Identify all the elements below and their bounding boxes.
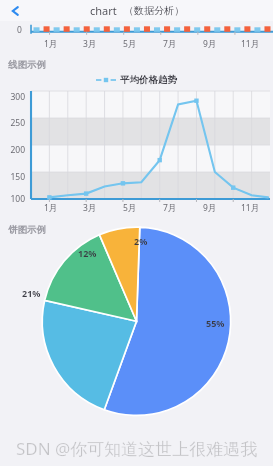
staticText: 7月 bbox=[163, 38, 177, 50]
staticText: 线图示例 bbox=[8, 59, 46, 71]
staticText: 3月 bbox=[83, 202, 97, 214]
staticText: SDN @你可知道这世上很难遇我 bbox=[16, 437, 258, 460]
staticText: 12% bbox=[78, 247, 97, 259]
staticText: 7月 bbox=[163, 202, 177, 214]
staticText: 饼图示例 bbox=[8, 224, 46, 236]
staticText: 9月 bbox=[203, 38, 217, 50]
staticText: 200 bbox=[0, 144, 25, 156]
staticText: 55% bbox=[206, 317, 225, 329]
staticText: 21% bbox=[22, 287, 41, 299]
staticText: 平均价格趋势 bbox=[120, 74, 177, 86]
staticText: 5月 bbox=[123, 202, 137, 214]
staticText: 150 bbox=[0, 171, 25, 183]
staticText: 11月 bbox=[241, 38, 260, 50]
staticText: 1月 bbox=[44, 38, 58, 50]
staticText: 250 bbox=[0, 117, 25, 129]
staticText: 0 bbox=[17, 24, 22, 36]
button[interactable]: Back bbox=[3, 1, 23, 21]
staticText: 1月 bbox=[44, 202, 58, 214]
staticText: 9月 bbox=[203, 202, 217, 214]
staticText: 300 bbox=[0, 91, 25, 103]
staticText: 11月 bbox=[241, 202, 260, 214]
staticText: 3月 bbox=[83, 38, 97, 50]
staticText: 5月 bbox=[123, 38, 137, 50]
staticText: chart bbox=[90, 3, 117, 18]
staticText: 100 bbox=[0, 193, 25, 205]
staticText: （数据分析） bbox=[124, 4, 184, 17]
staticText: 2% bbox=[134, 235, 148, 247]
